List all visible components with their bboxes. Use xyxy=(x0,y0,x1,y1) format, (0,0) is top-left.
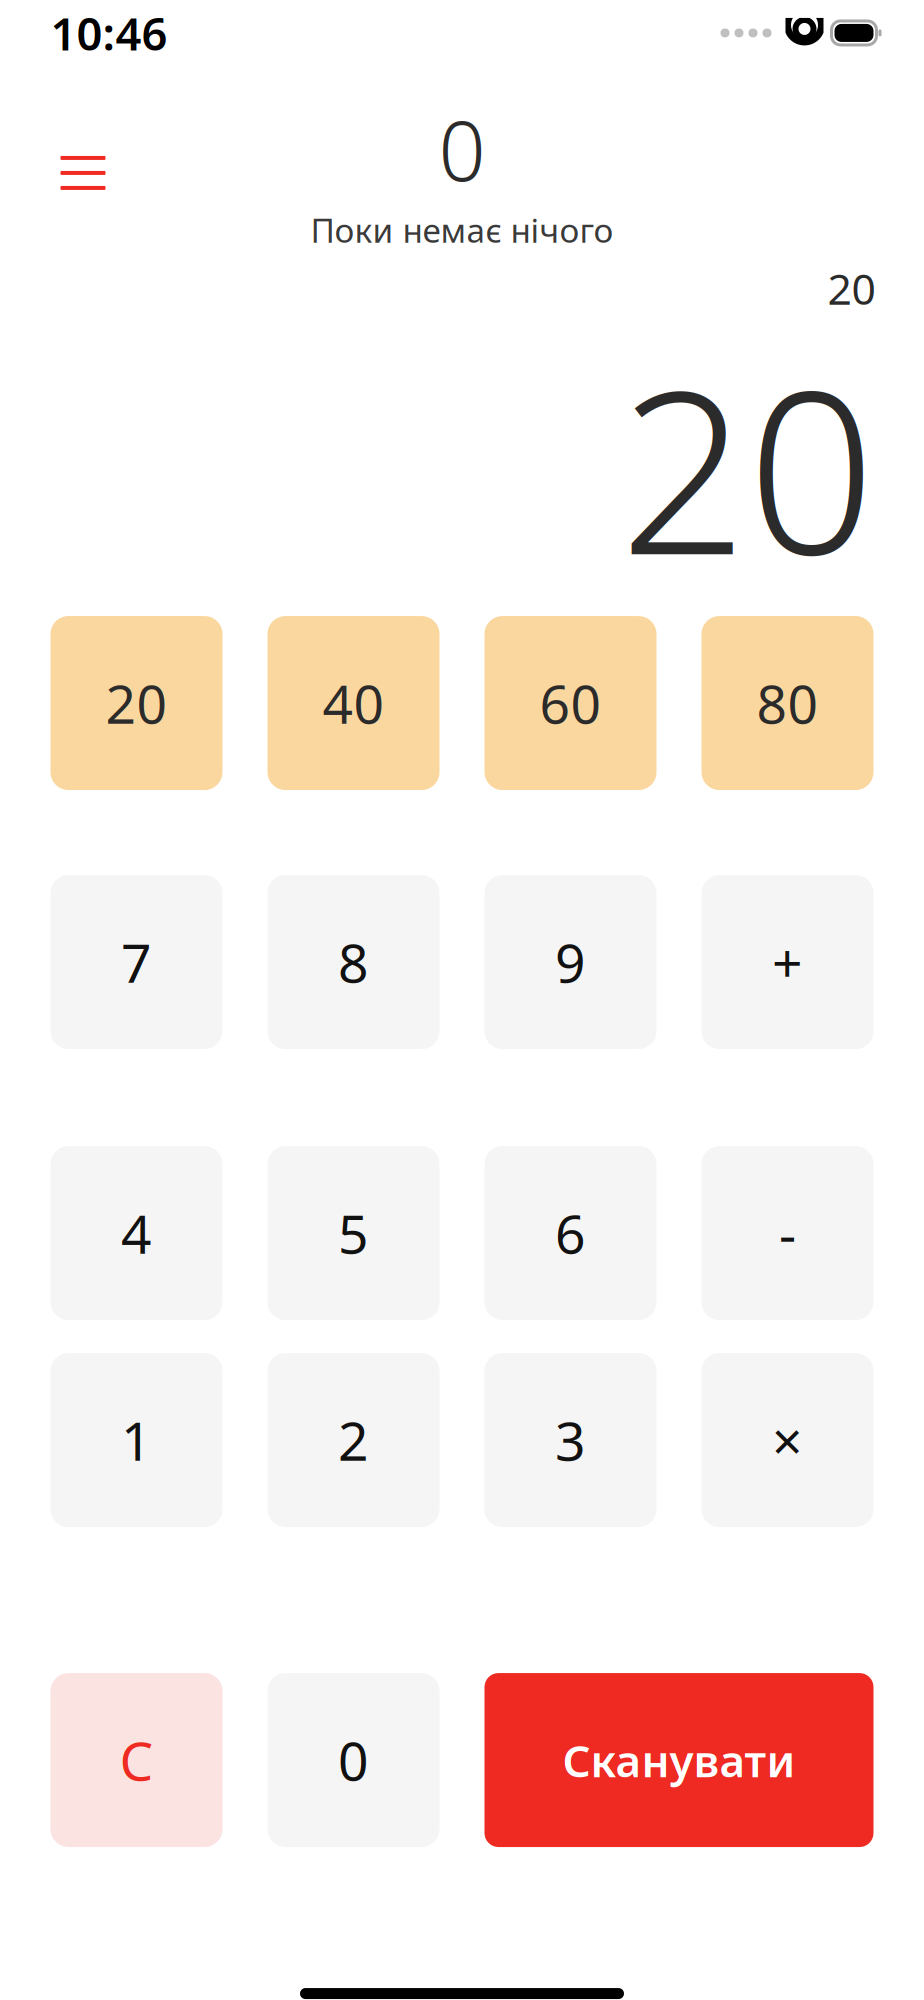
button[interactable]: - xyxy=(701,1146,873,1320)
button[interactable]: 9 xyxy=(484,875,656,1049)
staticText: 60 xyxy=(539,668,601,738)
button[interactable]: 7 xyxy=(50,875,222,1049)
staticText: 20 xyxy=(827,260,875,317)
staticText: Сканувати xyxy=(562,1731,795,1789)
button[interactable]: 60 xyxy=(484,616,656,790)
button[interactable]: 0 xyxy=(267,1673,439,1847)
staticText: 3 xyxy=(555,1405,586,1475)
button[interactable]: + xyxy=(701,875,873,1049)
button[interactable]: Сканувати xyxy=(484,1673,873,1847)
button[interactable]: 8 xyxy=(267,875,439,1049)
staticText: 1 xyxy=(121,1405,152,1475)
staticText: 5 xyxy=(338,1198,369,1268)
staticText: × xyxy=(772,1405,803,1475)
button[interactable]: C xyxy=(50,1673,222,1847)
staticText: 20 xyxy=(105,668,167,738)
button[interactable]: 3 xyxy=(484,1353,656,1527)
staticText: 80 xyxy=(756,668,818,738)
button[interactable]: 6 xyxy=(484,1146,656,1320)
button[interactable]: 2 xyxy=(267,1353,439,1527)
staticText: 6 xyxy=(555,1198,586,1268)
staticText: C xyxy=(119,1725,153,1795)
button[interactable]: Menu xyxy=(42,140,123,206)
button[interactable]: 80 xyxy=(701,616,873,790)
staticText: 20 xyxy=(619,319,875,616)
staticText: 10:46 xyxy=(50,3,167,63)
staticText: - xyxy=(779,1198,796,1268)
staticText: 9 xyxy=(555,927,586,997)
staticText: 4 xyxy=(121,1198,152,1268)
staticText: 0 xyxy=(438,94,485,204)
button[interactable]: × xyxy=(701,1353,873,1527)
staticText: 0 xyxy=(338,1725,369,1795)
button[interactable]: 4 xyxy=(50,1146,222,1320)
staticText: 8 xyxy=(338,927,369,997)
staticText: + xyxy=(772,927,803,997)
button[interactable]: 5 xyxy=(267,1146,439,1320)
staticText: 40 xyxy=(322,668,384,738)
button[interactable]: 20 xyxy=(50,616,222,790)
staticText: 2 xyxy=(338,1405,369,1475)
button[interactable]: 40 xyxy=(267,616,439,790)
staticText: Поки немає нічого xyxy=(310,208,613,252)
staticText: 7 xyxy=(121,927,152,997)
button[interactable]: 1 xyxy=(50,1353,222,1527)
